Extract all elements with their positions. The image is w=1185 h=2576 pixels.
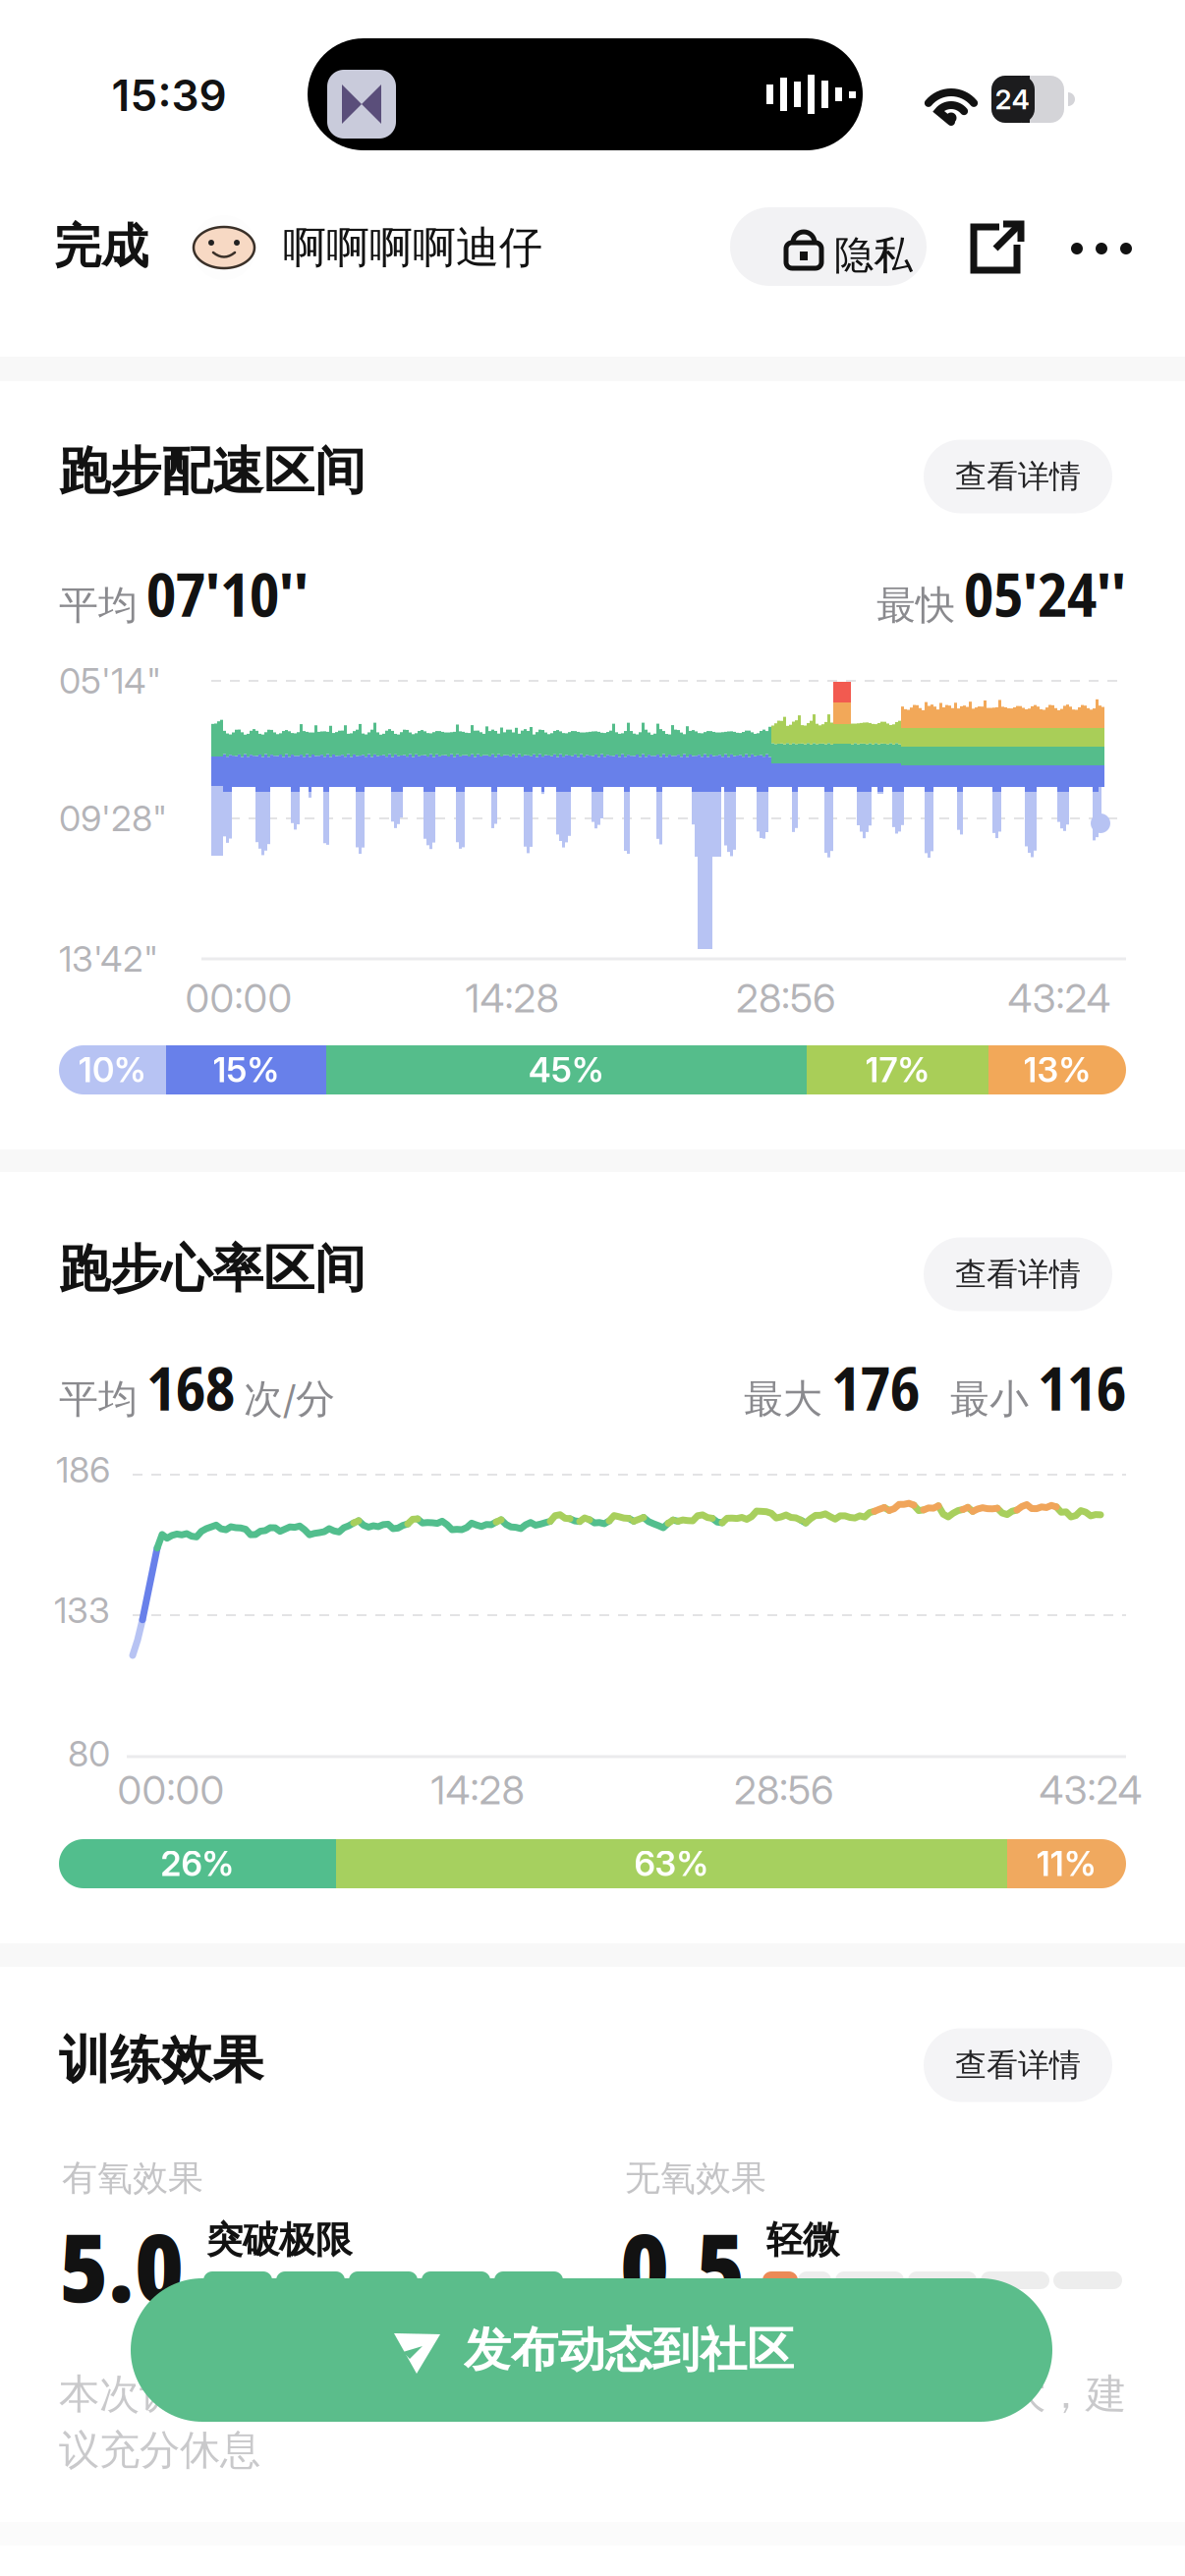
button[interactable]: 查看详情 <box>924 440 1112 513</box>
staticText: 最大 <box>744 1375 822 1423</box>
staticText: 14:28 <box>431 1767 524 1813</box>
staticText: 15:39 <box>112 70 226 121</box>
staticText: 43:24 <box>1039 1767 1142 1813</box>
staticText: 隐私 <box>834 231 913 280</box>
button[interactable] <box>1071 243 1132 254</box>
button[interactable]: 啊啊啊啊迪仔 <box>283 221 696 274</box>
staticText: 发布动态到社区 <box>464 2321 794 2379</box>
staticText: 平均 <box>59 581 138 629</box>
staticText: 17% <box>865 1050 930 1090</box>
staticText: 05'24'' <box>964 552 1126 634</box>
staticText: 有氧效果 <box>62 2156 203 2200</box>
staticText: 啊啊啊啊迪仔 <box>283 221 542 274</box>
staticText: 28:56 <box>736 975 836 1021</box>
staticText: 15% <box>213 1050 280 1090</box>
staticText: 13'42" <box>59 938 158 980</box>
button[interactable] <box>970 223 1023 274</box>
staticText: 最小 <box>950 1375 1029 1423</box>
staticText: 跑步心率区间 <box>59 1238 366 1301</box>
staticText: 无氧效果 <box>625 2156 766 2200</box>
staticText: 11% <box>1037 1844 1097 1884</box>
staticText: 平均 <box>59 1375 138 1423</box>
staticText: 168 <box>146 1346 235 1428</box>
staticText: 查看详情 <box>955 2046 1081 2084</box>
staticText: 133 <box>54 1589 110 1631</box>
staticText: 轻微 <box>766 2218 839 2263</box>
staticText: 议充分休息 <box>59 2425 260 2475</box>
staticText: 00:00 <box>117 1767 225 1813</box>
staticText: 186 <box>56 1449 110 1491</box>
staticText: 14:28 <box>465 975 559 1021</box>
staticText: 较大，建 <box>965 2369 1126 2419</box>
staticText: 查看详情 <box>955 1255 1081 1294</box>
staticText: 80 <box>68 1733 110 1775</box>
staticText: 本次训练强度较大 <box>59 2369 381 2419</box>
staticText: 45% <box>529 1050 604 1090</box>
button[interactable]: 隐私 <box>730 207 927 286</box>
staticText: 24 <box>995 83 1029 115</box>
staticText: 07'10'' <box>146 552 309 634</box>
staticText: 5.0 <box>59 2201 184 2330</box>
button[interactable]: 查看详情 <box>924 2028 1112 2102</box>
staticText: 训练效果 <box>59 2029 263 2092</box>
staticText: 跑步配速区间 <box>59 440 366 503</box>
staticText: 176 <box>831 1346 920 1428</box>
staticText: 05'14" <box>59 660 161 702</box>
staticText: 26% <box>161 1844 234 1884</box>
staticText: 次/分 <box>244 1375 335 1423</box>
staticText: 完成 <box>54 218 148 276</box>
staticText: 63% <box>634 1844 709 1884</box>
staticText: 查看详情 <box>955 457 1081 496</box>
staticText: 13% <box>1023 1050 1091 1090</box>
staticText: 最快 <box>876 581 955 629</box>
button[interactable]: 查看详情 <box>924 1237 1112 1311</box>
staticText: 43:24 <box>1008 975 1111 1021</box>
staticText: 0.5 <box>620 2201 745 2330</box>
staticText: 09'28" <box>59 798 167 839</box>
button[interactable]: 完成 <box>54 218 251 276</box>
staticText: 00:00 <box>185 975 292 1021</box>
staticText: 突破极限 <box>206 2218 352 2263</box>
staticText: 116 <box>1038 1346 1126 1428</box>
staticText: 28:56 <box>734 1767 834 1813</box>
button[interactable]: 发布动态到社区 <box>131 2278 1052 2422</box>
staticText: 10% <box>79 1050 146 1090</box>
